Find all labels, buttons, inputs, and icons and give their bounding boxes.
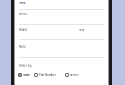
staticText: Brand [19, 28, 27, 31]
staticText: Part Number [39, 73, 56, 77]
staticText: Series [19, 12, 27, 15]
button[interactable]: Part Number [34, 73, 65, 77]
staticText: Name [19, 1, 26, 4]
staticText: Note [19, 45, 26, 48]
staticText: Order by: [19, 64, 32, 67]
staticText: Name [23, 73, 30, 77]
button[interactable]: Series [65, 73, 81, 77]
button[interactable]: Name [18, 73, 34, 77]
staticText: Year [79, 28, 84, 31]
staticText: Series [70, 73, 78, 77]
